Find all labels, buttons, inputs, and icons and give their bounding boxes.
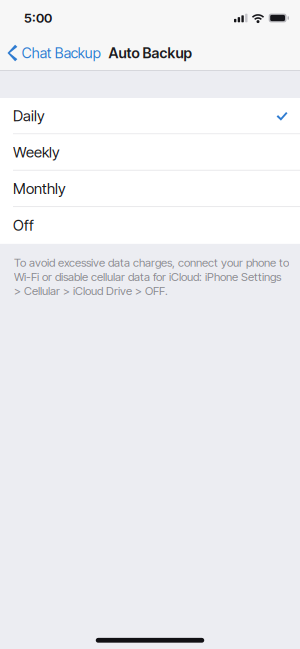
staticText: Off bbox=[13, 216, 34, 234]
staticText: 5:00 bbox=[24, 10, 52, 26]
button[interactable]: Daily bbox=[0, 98, 300, 134]
staticText: Auto Backup bbox=[108, 44, 191, 62]
button[interactable]: Chat Backup bbox=[0, 36, 107, 70]
button[interactable]: Off bbox=[0, 207, 300, 244]
staticText: Wi-Fi or disable cellular data for iClou… bbox=[14, 270, 281, 284]
button[interactable]: Monthly bbox=[0, 171, 300, 207]
staticText: Monthly bbox=[13, 179, 66, 198]
staticText: Daily bbox=[13, 107, 45, 125]
staticText: Weekly bbox=[13, 143, 60, 161]
staticText: Chat Backup bbox=[22, 44, 101, 62]
staticText: > Cellular > iCloud Drive > OFF. bbox=[14, 284, 168, 298]
staticText: To avoid excessive data charges, connect… bbox=[14, 256, 289, 269]
button[interactable]: Weekly bbox=[0, 134, 300, 171]
